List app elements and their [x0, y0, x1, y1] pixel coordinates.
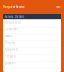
staticText: Assigned: [5, 48, 18, 51]
staticText: Save: [56, 5, 61, 9]
staticText: Created: [5, 55, 16, 58]
button[interactable]: Customer: [5, 27, 59, 34]
staticText: Request Service: [3, 5, 25, 9]
button[interactable]: Location: [5, 61, 59, 68]
staticText: Customer: [5, 27, 18, 31]
button[interactable]: Created: [5, 55, 59, 61]
staticText: Priority: [5, 41, 15, 44]
button[interactable]: Save: [56, 5, 61, 9]
staticText: Location: [5, 61, 16, 65]
staticText: Service Details: [5, 15, 24, 18]
button[interactable]: Status: [5, 34, 59, 41]
button[interactable]: Request ID: [5, 21, 59, 27]
staticText: Status: [5, 34, 12, 38]
button[interactable]: Assigned: [5, 48, 59, 55]
staticText: Request ID: [5, 21, 21, 24]
button[interactable]: Priority: [5, 41, 59, 48]
